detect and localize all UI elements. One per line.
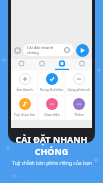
staticText: Thêm (74, 112, 84, 117)
staticText: Cài đặt nhanh chóng (27, 45, 64, 55)
staticText: CÀI ĐẶT NHANH CHÓNG (0, 133, 103, 157)
staticText: Tuỳ chọn âm (14, 112, 35, 117)
button[interactable]: Keyboard (14, 47, 21, 54)
button[interactable]: Âm thanh phím (12, 71, 37, 94)
button[interactable]: Lặng phím số (66, 71, 91, 94)
button[interactable]: Send (76, 44, 89, 57)
staticText: Lặng phím số (67, 87, 90, 92)
button[interactable]: Cài đặt nhanh chóng (23, 44, 74, 56)
button[interactable]: Tab 2 (32, 59, 52, 70)
button[interactable]: Tab 4 (72, 59, 92, 70)
button[interactable]: Tuỳ chọn âm (12, 96, 37, 119)
staticText: Âm thanh phím (12, 87, 37, 92)
staticText: Giao diện (44, 112, 60, 117)
button[interactable]: Tab 3 (52, 59, 72, 70)
button[interactable]: Thêm (66, 96, 91, 119)
staticText: Tuỳ chỉnh bàn phím riêng của bạn (12, 160, 92, 167)
staticText: Rung khi bấm (40, 87, 63, 92)
button[interactable]: Tab 1 (11, 59, 32, 70)
button[interactable]: Giao diện (39, 96, 64, 119)
button[interactable]: Rung khi bấm (39, 71, 64, 94)
